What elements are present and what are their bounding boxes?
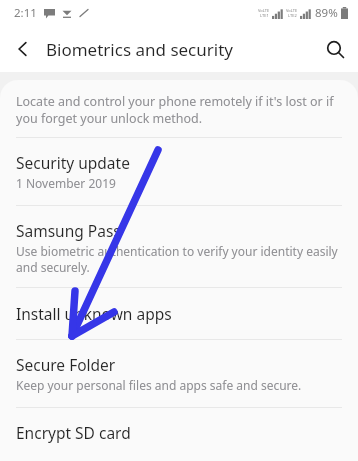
staticText: 89% bbox=[315, 5, 338, 21]
staticText: Samsung Pass bbox=[16, 220, 121, 241]
button[interactable]: Search bbox=[312, 26, 358, 72]
staticText: Security update bbox=[16, 152, 130, 173]
staticText: VoLTE bbox=[286, 8, 298, 13]
staticText: Keep your personal files and apps safe a… bbox=[16, 377, 302, 393]
button[interactable]: Install unknown apps bbox=[0, 288, 358, 339]
staticText: Secure Folder bbox=[16, 354, 116, 375]
staticText: LTE2 bbox=[288, 13, 297, 18]
button[interactable]: Samsung Pass bbox=[0, 206, 358, 287]
staticText: Encrypt SD card bbox=[16, 422, 131, 443]
button[interactable]: Security update bbox=[0, 138, 358, 205]
staticText: VoLTE bbox=[258, 8, 270, 13]
button[interactable]: Encrypt SD card bbox=[0, 408, 358, 461]
staticText: Locate and control your phone remotely i… bbox=[16, 93, 340, 127]
button[interactable]: Secure Folder bbox=[0, 340, 358, 407]
staticText: 1 November 2019 bbox=[16, 175, 116, 191]
button[interactable]: Back bbox=[0, 26, 46, 72]
staticText: LTE1 bbox=[260, 13, 269, 18]
staticText: Use biometric authentication to verify y… bbox=[16, 243, 338, 275]
staticText: Install unknown apps bbox=[16, 303, 172, 324]
staticText: Biometrics and security bbox=[46, 38, 233, 61]
staticText: 2:11 bbox=[14, 5, 37, 21]
